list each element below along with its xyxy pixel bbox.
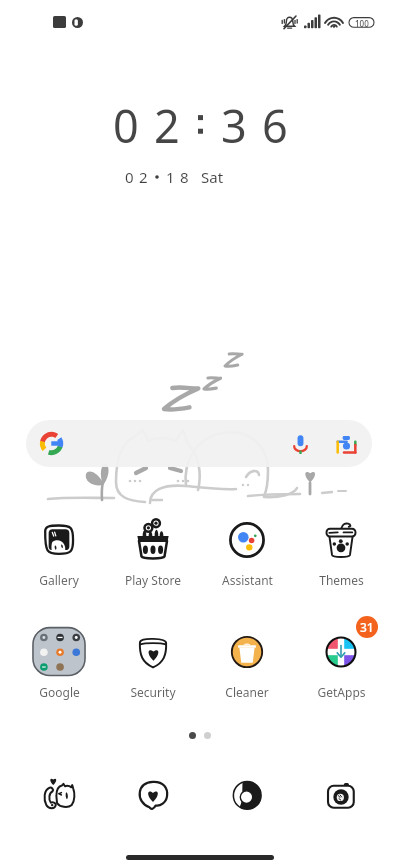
staticText: Assistant bbox=[222, 572, 273, 588]
button[interactable]: Google Lens bbox=[327, 425, 365, 463]
staticText: 31 bbox=[360, 619, 374, 635]
button[interactable]: Play Store bbox=[106, 512, 200, 588]
button[interactable]: Phone bbox=[12, 771, 106, 819]
button[interactable]: Security bbox=[106, 624, 200, 700]
staticText: Gallery bbox=[39, 572, 79, 588]
staticText: 8 bbox=[180, 167, 189, 187]
staticText: Google bbox=[39, 684, 80, 700]
staticText: Sat bbox=[201, 167, 224, 187]
staticText: 3 bbox=[221, 95, 247, 156]
button[interactable]: Messages bbox=[106, 771, 200, 819]
button[interactable]: Gallery bbox=[12, 512, 106, 588]
button[interactable]: Browser bbox=[200, 771, 294, 819]
staticText: Cleaner bbox=[225, 684, 269, 700]
button[interactable]: Cleaner bbox=[200, 624, 294, 700]
button[interactable]: Assistant bbox=[200, 512, 294, 588]
staticText: 2 bbox=[139, 167, 148, 187]
staticText: 0 bbox=[113, 95, 139, 156]
button[interactable]: Camera bbox=[294, 771, 388, 819]
staticText: GetApps bbox=[317, 684, 366, 700]
staticText: Themes bbox=[319, 572, 364, 588]
button[interactable]: Google bbox=[12, 624, 106, 700]
button[interactable]: Voice search bbox=[281, 425, 319, 463]
button[interactable]: 31 bbox=[294, 624, 388, 700]
staticText: 0 bbox=[125, 167, 134, 187]
button[interactable]: Themes bbox=[294, 512, 388, 588]
staticText: 2 bbox=[154, 95, 180, 156]
staticText: 1 bbox=[166, 167, 175, 187]
staticText: Security bbox=[130, 684, 176, 700]
staticText: Play Store bbox=[125, 572, 181, 588]
staticText: 6 bbox=[262, 95, 288, 156]
button[interactable]: Voice search bbox=[26, 420, 372, 467]
staticText: 100 bbox=[355, 18, 369, 28]
